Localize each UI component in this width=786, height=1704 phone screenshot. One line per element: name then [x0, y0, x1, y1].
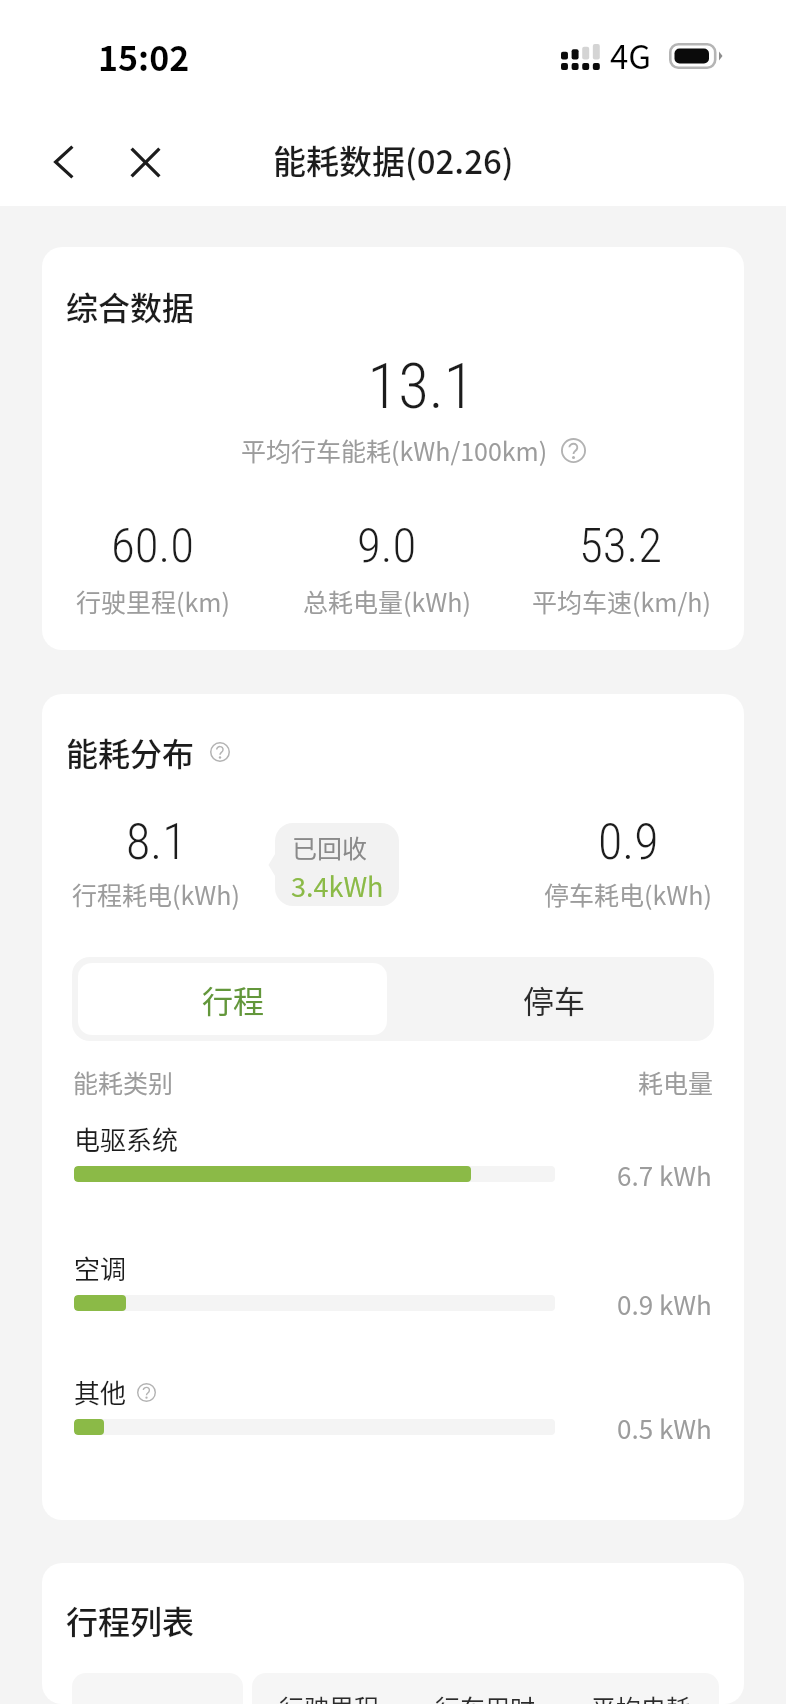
- staticText: 53.2: [579, 517, 663, 574]
- staticText: 15:02: [98, 32, 190, 81]
- staticText: 能耗类别: [73, 1064, 174, 1100]
- staticText: 8.1: [126, 813, 187, 872]
- staticText: 行程列表: [66, 1597, 195, 1643]
- staticText: 其他: [74, 1373, 127, 1411]
- staticText: 0.5 kWh: [617, 1409, 712, 1445]
- staticText: 平均车速(km/h): [532, 583, 711, 619]
- staticText: 耗电量: [638, 1064, 714, 1100]
- staticText: 空调: [74, 1249, 127, 1287]
- staticText: 平均行车能耗(kWh/100km): [241, 432, 548, 468]
- staticText: 已回收: [292, 829, 368, 865]
- staticText: 3.4kWh: [291, 866, 384, 905]
- button[interactable]: Close: [123, 140, 167, 184]
- staticText: 行驶里程(km): [76, 583, 230, 619]
- staticText: 0.9: [598, 813, 659, 872]
- staticText: 平均电耗: [591, 1689, 692, 1704]
- staticText: 能耗分布: [66, 729, 195, 775]
- staticText: 行程: [202, 977, 264, 1022]
- staticText: 电驱系统: [74, 1120, 179, 1158]
- staticText: 0.9 kWh: [617, 1285, 712, 1321]
- staticText: 综合数据: [66, 283, 195, 329]
- staticText: 停车: [523, 977, 585, 1022]
- button[interactable]: 行程: [78, 963, 387, 1035]
- staticText: 总耗电量(kWh): [303, 583, 471, 619]
- staticText: 行驶里程: [279, 1689, 380, 1704]
- staticText: 行程耗电(kWh): [72, 876, 240, 912]
- button[interactable]: 停车: [393, 957, 714, 1041]
- button[interactable]: Back: [42, 140, 86, 184]
- staticText: 4G: [610, 31, 652, 79]
- staticText: 60.0: [111, 517, 195, 574]
- staticText: 13.1: [70, 350, 744, 424]
- staticText: 6.7 kWh: [617, 1156, 712, 1192]
- staticText: 能耗数据(02.26): [273, 136, 514, 184]
- staticText: 9.0: [357, 517, 417, 574]
- staticText: 停车耗电(kWh): [544, 876, 712, 912]
- staticText: 行车用时: [435, 1689, 536, 1704]
